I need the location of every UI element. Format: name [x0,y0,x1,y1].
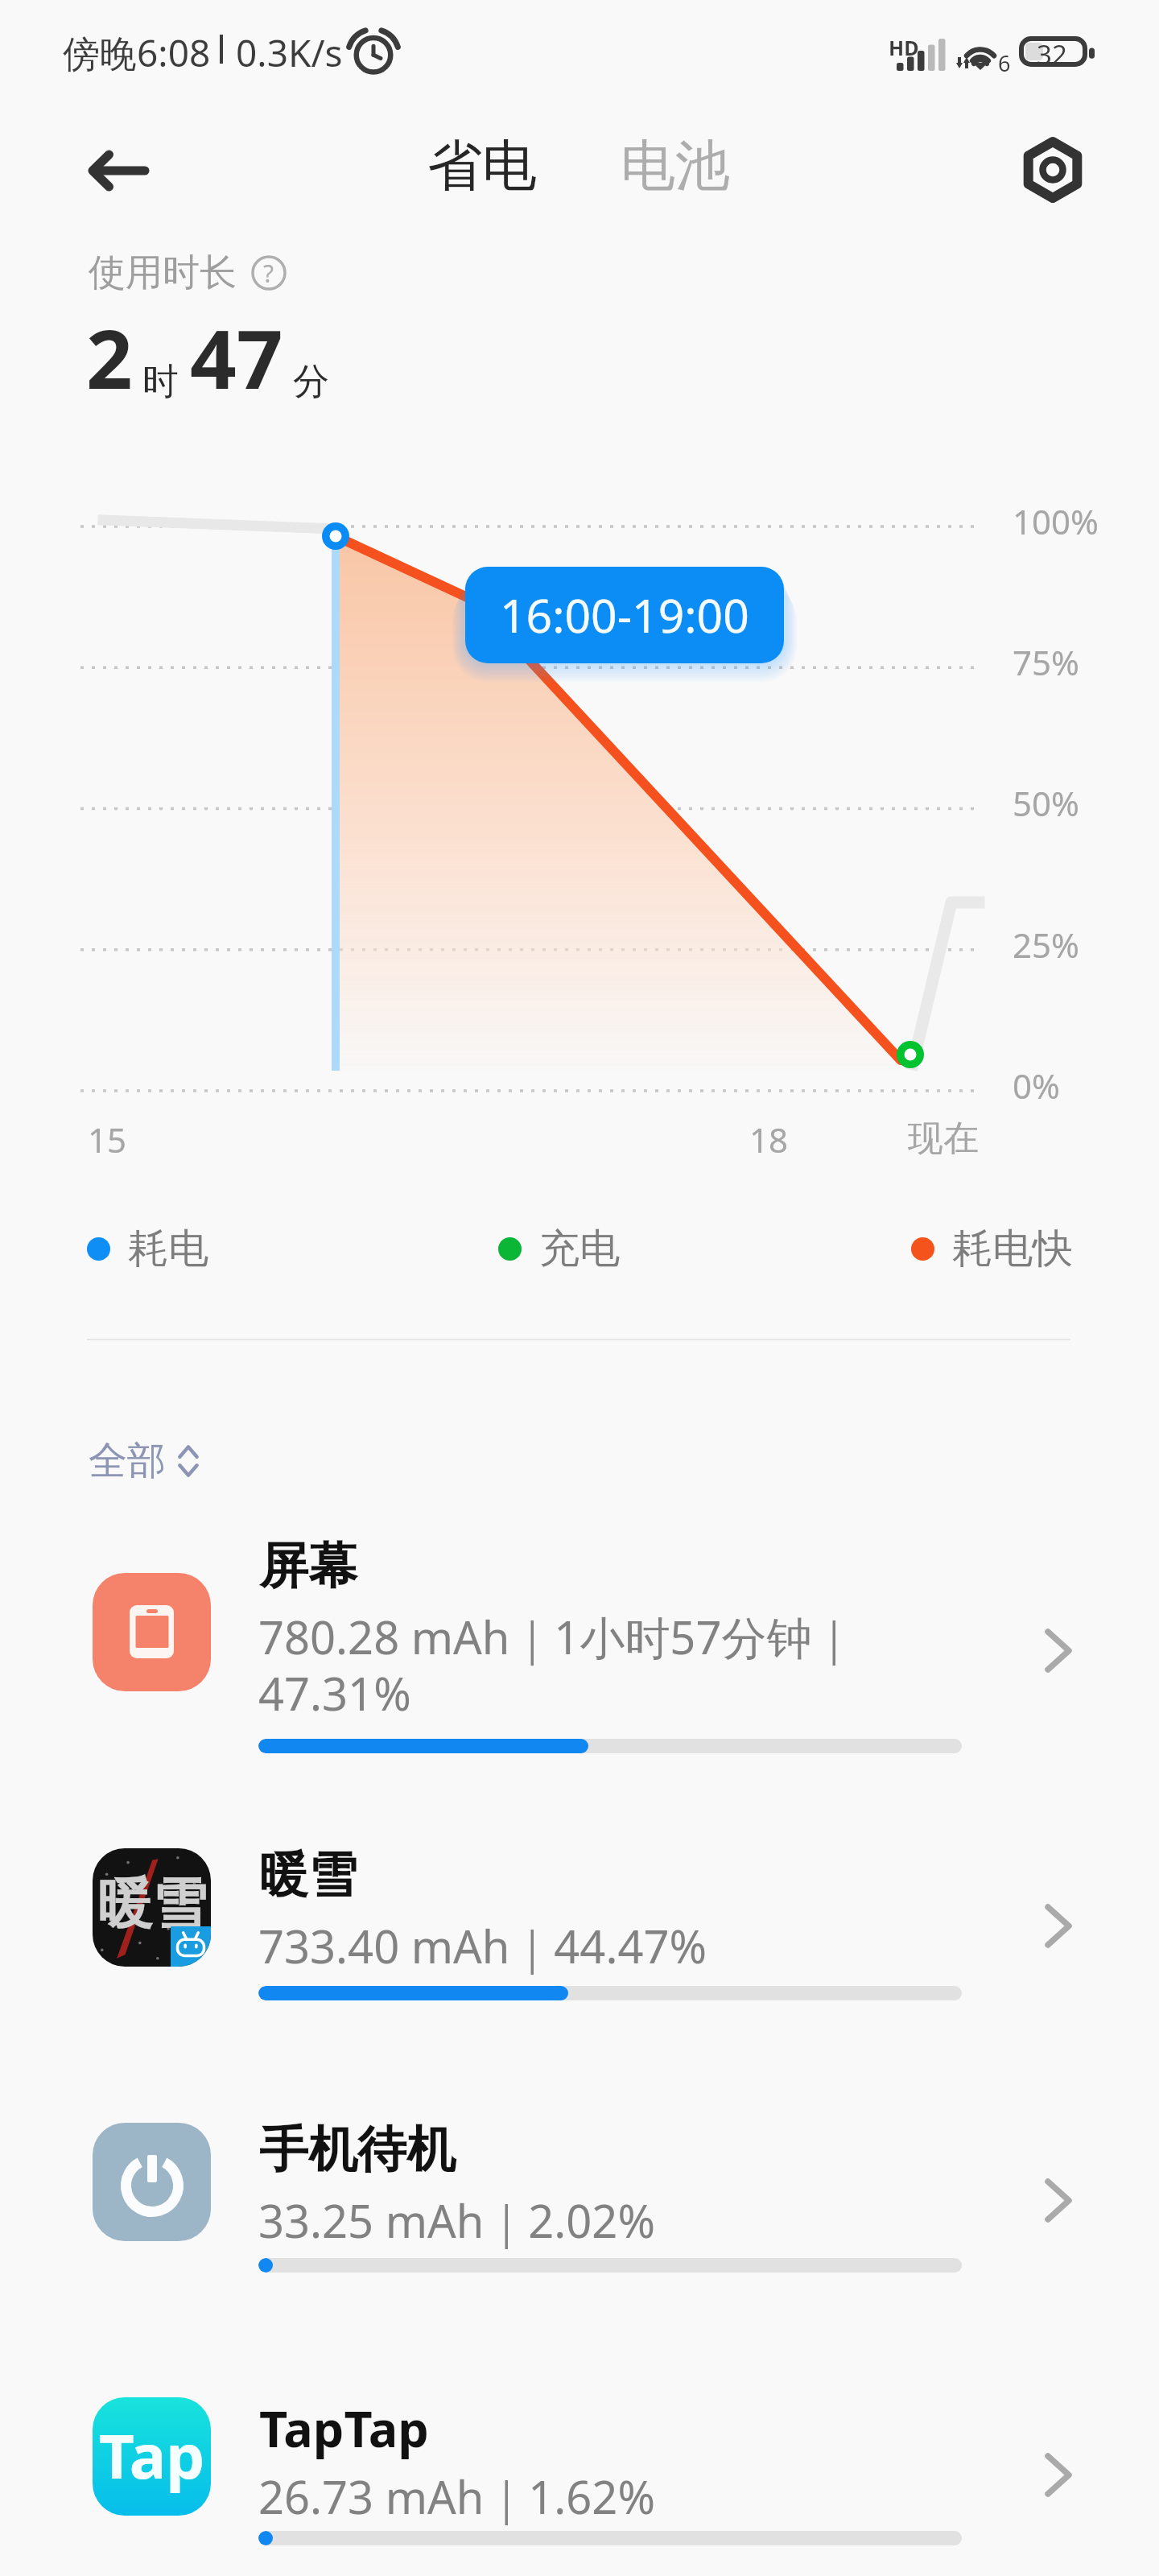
staticText: 耗电 [128,1224,208,1274]
button[interactable]: 手机待机 [0,2074,1159,2297]
staticText: 75% [1013,639,1079,685]
button[interactable]: Back [73,125,164,216]
staticText: 33.25 mAh｜2.02% [258,2190,655,2251]
staticText: 47 [190,302,283,413]
staticText: 25% [1013,922,1079,968]
staticText: 2 [86,302,133,413]
staticText: 15 [88,1117,127,1162]
button[interactable]: 充电 [498,1224,620,1274]
staticText: HD [889,34,919,61]
button[interactable]: 耗电 [87,1224,208,1274]
staticText: ? [263,257,274,290]
staticText: 18 [749,1117,789,1162]
button[interactable]: 省电 [413,122,551,211]
button[interactable]: 暖雪 [0,1800,1159,2025]
staticText: 屏幕 [259,1535,357,1597]
button[interactable]: 电池 [606,122,744,211]
staticText: 充电 [539,1224,620,1274]
button[interactable]: 16:00-19:00 [465,567,784,663]
staticText: 733.40 mAh｜44.47% [258,1915,707,1976]
staticText: 0.3K/s [236,27,343,78]
staticText: 780.28 mAh｜1小时57分钟｜ [258,1606,856,1667]
staticText: 0% [1013,1063,1060,1108]
staticText: 分 [293,359,329,405]
button[interactable]: Settings [1008,125,1098,215]
button[interactable]: 屏幕 [0,1525,1159,1778]
staticText: 手机待机 [259,2119,456,2181]
staticText: 耗电快 [952,1224,1073,1274]
staticText: 50% [1013,780,1079,826]
staticText: TapTap [259,2395,429,2462]
staticText: 100% [1013,498,1099,544]
staticText: 26.73 mAh｜1.62% [258,2466,655,2527]
staticText: 暖雪 [97,1870,207,1939]
staticText: 全部 [89,1437,166,1485]
staticText: 省电 [427,132,537,201]
staticText: 电池 [621,132,730,201]
staticText: 47.31% [258,1662,411,1724]
staticText: 时 [142,359,179,405]
staticText: 16:00-19:00 [500,584,749,646]
button[interactable]: 全部 [89,1437,200,1485]
button[interactable]: Help [251,255,287,291]
staticText: 32 [1037,36,1067,72]
button[interactable]: 耗电快 [911,1224,1073,1274]
staticText: 暖雪 [259,1844,357,1906]
staticText: 现在 [908,1117,979,1161]
staticText: Tap [99,2413,205,2497]
button[interactable]: Tap [0,2349,1159,2570]
staticText: 6 [998,48,1011,78]
staticText: 使用时长 [89,250,237,296]
staticText: 傍晚6:08 [63,27,211,78]
